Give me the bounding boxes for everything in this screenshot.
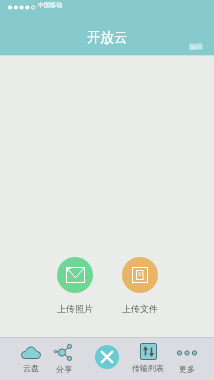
button[interactable] <box>57 257 93 293</box>
staticText: 上传文件 <box>122 303 158 314</box>
button[interactable]: 编辑 <box>189 42 203 51</box>
button[interactable] <box>122 257 158 293</box>
staticText: 传输列表 <box>132 363 164 373</box>
staticText: 云盘 <box>23 363 39 373</box>
button[interactable]: 分享 <box>44 344 84 374</box>
button[interactable]: 云盘 <box>9 344 53 373</box>
button[interactable]: 传输列表 <box>128 343 168 373</box>
staticText: 编辑 <box>189 42 203 51</box>
staticText: 分享 <box>56 364 72 374</box>
staticText: 中国移动 <box>38 1 62 9</box>
staticText: 开放云 <box>87 29 128 46</box>
button[interactable] <box>95 345 119 369</box>
staticText: 更多 <box>179 364 195 374</box>
button[interactable]: 更多 <box>167 344 207 374</box>
staticText: 上传照片 <box>57 303 93 314</box>
